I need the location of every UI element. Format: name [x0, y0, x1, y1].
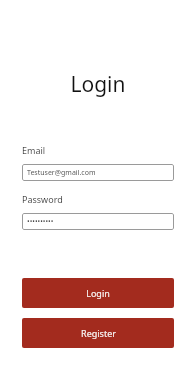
- staticText: ••••••••••: [27, 217, 54, 227]
- button[interactable]: Login: [22, 278, 174, 308]
- staticText: Login: [70, 70, 126, 99]
- button[interactable]: Testuser@gmail.com: [22, 164, 174, 181]
- button[interactable]: Register: [22, 318, 174, 348]
- staticText: Password: [22, 193, 63, 205]
- staticText: Register: [81, 327, 116, 339]
- button[interactable]: ••••••••••: [22, 213, 174, 230]
- staticText: Testuser@gmail.com: [27, 168, 96, 178]
- staticText: Login: [86, 287, 110, 299]
- staticText: Email: [22, 144, 46, 156]
